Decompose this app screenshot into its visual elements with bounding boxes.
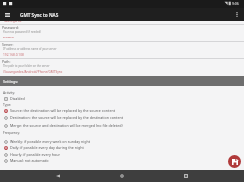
staticText: Daily: if possible every day during the … [10, 145, 84, 150]
staticText: Password: [2, 25, 19, 30]
staticText: Path: [2, 59, 11, 64]
staticText: Your nas password (if needed) [3, 30, 41, 34]
button[interactable]: Daily: if possible every day during the … [0, 144, 244, 151]
button[interactable]: Disabled [0, 95, 244, 102]
staticText: Type: [3, 102, 12, 106]
staticText: Server: [2, 42, 14, 47]
staticText: Manual: not automatic [10, 158, 49, 163]
staticText: GMT Sync to NAS [20, 12, 59, 18]
staticText: Frequency: [3, 130, 20, 134]
staticText: ••••••••• [3, 36, 14, 40]
button[interactable]: Weekly: if possible every week on sunday… [0, 138, 244, 145]
staticText: Source: the destination will be replaced… [10, 108, 115, 113]
button[interactable]: Back [52, 170, 64, 182]
button[interactable]: Password: [0, 24, 244, 41]
staticText: 9:06 [232, 1, 239, 6]
staticText: Weekly: if possible every week on sunday… [10, 139, 91, 144]
staticText: /Sauvegardes/Android/Phone/GMTSync [3, 70, 63, 74]
button[interactable]: More options [230, 8, 244, 21]
button[interactable]: Save settings [228, 155, 241, 168]
staticText: Settings: [3, 79, 19, 84]
button[interactable]: Source: the destination will be replaced… [0, 107, 244, 114]
staticText: IP address or address name of your serve… [3, 47, 57, 51]
staticText: Hourly: if possible every hour [10, 152, 60, 157]
button[interactable]: Merge: the source and destination will b… [0, 122, 244, 129]
staticText: Merge: the source and destination will b… [10, 123, 123, 128]
staticText: Destination: the source will be replaced… [10, 115, 124, 120]
staticText: The path to your folder on the server [3, 64, 50, 68]
staticText: Disabled [10, 96, 25, 101]
button[interactable]: Recent apps [180, 170, 192, 182]
button[interactable]: Server: [0, 41, 244, 58]
button[interactable]: Hourly: if possible every hour [0, 151, 244, 158]
staticText: sauvegarde [4, 19, 22, 23]
button[interactable]: Manual: not automatic [0, 157, 244, 164]
button[interactable]: Home [116, 170, 128, 182]
staticText: 192.168.0.108 [3, 53, 24, 57]
button[interactable]: Open navigation drawer [0, 8, 14, 21]
staticText: Activity: [3, 90, 16, 94]
button[interactable]: Path: [0, 58, 244, 75]
button[interactable]: Destination: the source will be replaced… [0, 114, 244, 121]
